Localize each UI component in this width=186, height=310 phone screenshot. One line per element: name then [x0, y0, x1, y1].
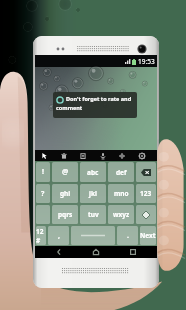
button[interactable]: ? — [36, 184, 50, 203]
button[interactable]: tuv — [80, 205, 106, 224]
staticText: 19:53 — [138, 57, 155, 66]
button[interactable]: ! — [36, 162, 50, 182]
button[interactable]: Clipboard — [74, 150, 91, 161]
staticText: @ — [62, 167, 69, 177]
staticText: ! — [42, 167, 44, 177]
staticText: wxyz — [113, 210, 130, 219]
button[interactable]: , — [48, 226, 69, 245]
staticText: 12# — [36, 227, 46, 245]
button[interactable]: Pointer — [35, 150, 52, 161]
staticText: mno — [114, 189, 129, 198]
staticText: pqrs — [58, 210, 73, 219]
button[interactable]: 12# — [36, 226, 46, 245]
button[interactable]: def — [108, 162, 134, 182]
button[interactable]: pqrs — [52, 205, 78, 224]
button[interactable]: ghi — [52, 184, 78, 203]
button[interactable]: Delete — [55, 150, 72, 161]
button[interactable]: Voice input — [94, 150, 111, 161]
button[interactable]: Move cursor — [113, 150, 130, 161]
staticText: , — [58, 231, 60, 241]
staticText: ? — [41, 189, 45, 199]
button[interactable]: Home — [83, 246, 109, 258]
button[interactable] — [36, 205, 50, 224]
staticText: . — [127, 231, 129, 241]
button[interactable] — [136, 205, 156, 224]
staticText: def — [116, 168, 127, 177]
staticText: ghi — [60, 189, 71, 198]
button[interactable]: Don't forget to rate and — [53, 92, 137, 118]
staticText: Next — [140, 231, 156, 240]
staticText: jkl — [89, 189, 97, 198]
button[interactable]: @ — [52, 162, 78, 182]
button[interactable]: Recent apps — [120, 246, 146, 258]
button[interactable]: abc — [80, 162, 106, 182]
button[interactable]: 123 — [136, 184, 156, 203]
staticText: 123 — [140, 189, 152, 198]
button[interactable] — [136, 162, 156, 182]
staticText: comment — [56, 104, 83, 111]
staticText: tuv — [88, 210, 99, 219]
staticText: abc — [87, 168, 99, 177]
button[interactable]: mno — [108, 184, 134, 203]
button[interactable]: Back — [46, 246, 72, 258]
button[interactable]: . — [117, 226, 138, 245]
button[interactable]: Next — [140, 226, 156, 245]
staticText: Don't forget to rate and — [66, 95, 132, 102]
button[interactable]: wxyz — [108, 205, 134, 224]
button[interactable]: jkl — [80, 184, 106, 203]
button[interactable] — [71, 226, 115, 245]
button[interactable]: Settings — [133, 150, 150, 161]
